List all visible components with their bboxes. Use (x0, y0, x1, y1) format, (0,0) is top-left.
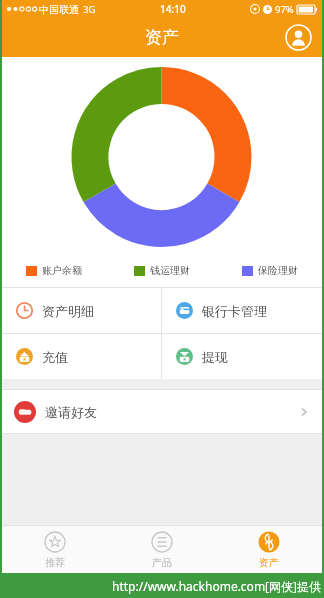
staticText: 推荐 (45, 556, 65, 569)
button[interactable]: 资产 (215, 526, 322, 573)
staticText: 资产明细 (42, 303, 94, 319)
staticText: 账户余额 (42, 264, 82, 277)
button[interactable]: Profile (285, 24, 312, 51)
button[interactable]: 充值 (2, 334, 161, 379)
staticText: 资产 (145, 27, 179, 48)
staticText: 中国联通 (39, 3, 79, 16)
staticText: 3G (83, 3, 96, 16)
button[interactable]: 银行卡管理 (162, 288, 322, 333)
button[interactable]: 邀请好友 (2, 390, 322, 433)
staticText: 充值 (42, 349, 68, 365)
staticText: 产品 (152, 556, 172, 569)
staticText: 钱运理财 (150, 264, 190, 277)
button[interactable]: 提现 (162, 334, 322, 379)
button[interactable]: 资产明细 (2, 288, 161, 333)
staticText: http://www.hackhome.com[网侠]提供 (112, 578, 321, 594)
button[interactable]: 产品 (108, 526, 215, 573)
staticText: 银行卡管理 (202, 303, 267, 319)
staticText: 97% (275, 3, 294, 16)
staticText: 提现 (202, 349, 228, 365)
staticText: 资产 (259, 556, 279, 569)
button[interactable]: 推荐 (2, 526, 108, 573)
staticText: 邀请好友 (45, 404, 97, 420)
staticText: 保险理财 (258, 264, 298, 277)
staticText: 14:10 (160, 2, 186, 16)
